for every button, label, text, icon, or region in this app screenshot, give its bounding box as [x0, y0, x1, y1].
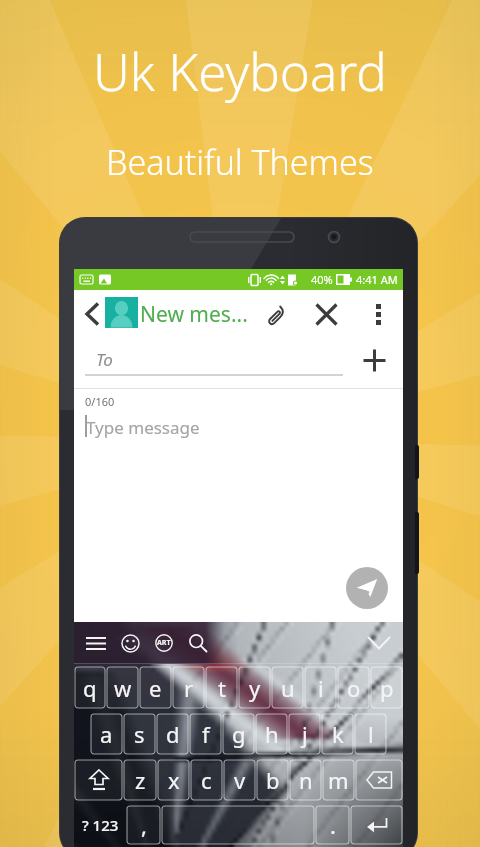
staticText: o	[347, 673, 361, 703]
button[interactable]: More options	[362, 298, 394, 330]
button[interactable]	[323, 760, 354, 800]
button[interactable]	[290, 760, 321, 800]
staticText: 0/160	[85, 394, 115, 409]
button[interactable]: Menu	[82, 629, 110, 657]
staticText: 40%	[311, 272, 333, 287]
staticText: r	[184, 673, 194, 703]
button[interactable]	[124, 760, 156, 800]
staticText: a	[100, 719, 113, 749]
staticText: e	[149, 673, 162, 703]
staticText: To	[96, 348, 113, 371]
staticText: k	[332, 719, 344, 749]
staticText: h	[265, 719, 279, 749]
button[interactable]	[157, 714, 188, 754]
button[interactable]	[371, 667, 402, 708]
button[interactable]	[206, 667, 237, 708]
button[interactable]	[223, 714, 254, 754]
button[interactable]: Enter	[351, 806, 402, 844]
button[interactable]: Back	[76, 298, 108, 330]
button[interactable]	[107, 667, 138, 708]
button[interactable]: Attach	[260, 298, 292, 330]
button[interactable]: Art themes	[150, 629, 178, 657]
staticText: ,	[141, 810, 147, 840]
button[interactable]	[173, 667, 204, 708]
staticText: j	[302, 719, 308, 749]
staticText: t	[218, 673, 226, 703]
staticText: v	[234, 765, 246, 795]
staticText: c	[201, 765, 212, 795]
staticText: d	[166, 719, 180, 749]
button[interactable]	[355, 714, 386, 754]
button[interactable]	[124, 714, 155, 754]
staticText: 4:41 AM	[356, 272, 398, 287]
button[interactable]	[158, 760, 189, 800]
staticText: y	[249, 673, 261, 703]
button[interactable]	[140, 667, 171, 708]
staticText: g	[232, 719, 246, 749]
button[interactable]	[272, 667, 303, 708]
staticText: f	[202, 719, 210, 749]
button[interactable]	[191, 760, 222, 800]
button[interactable]: ? 123	[74, 803, 126, 847]
staticText: m	[328, 765, 349, 795]
button[interactable]	[75, 667, 105, 708]
staticText: n	[299, 765, 313, 795]
button[interactable]	[316, 806, 349, 844]
staticText: New mes...	[140, 300, 248, 329]
staticText: u	[281, 673, 295, 703]
button[interactable]: Add recipient	[358, 344, 390, 376]
staticText: b	[266, 765, 280, 795]
button[interactable]: Emoji	[116, 629, 144, 657]
button[interactable]	[224, 760, 255, 800]
staticText: l	[368, 719, 374, 749]
button[interactable]: Search	[184, 629, 212, 657]
button[interactable]	[257, 760, 288, 800]
button[interactable]	[239, 667, 270, 708]
button[interactable]: Shift	[75, 760, 122, 800]
button[interactable]	[256, 714, 287, 754]
button[interactable]	[289, 714, 320, 754]
staticText: s	[134, 719, 145, 749]
staticText: .	[330, 810, 336, 840]
staticText: Uk Keyboard	[93, 36, 387, 105]
staticText: z	[135, 765, 146, 795]
staticText: w	[114, 673, 132, 703]
staticText: ? 123	[82, 815, 119, 835]
staticText: q	[83, 673, 97, 703]
button[interactable]: Space	[162, 806, 314, 844]
button[interactable]: Close	[310, 298, 342, 330]
staticText: i	[318, 673, 324, 703]
staticText: x	[168, 765, 180, 795]
staticText: Beautiful Themes	[106, 139, 374, 185]
button[interactable]	[338, 667, 369, 708]
button[interactable]	[91, 714, 122, 754]
button[interactable]	[322, 714, 353, 754]
button[interactable]: Send	[346, 567, 388, 609]
staticText: p	[380, 673, 394, 703]
staticText: Type message	[86, 416, 200, 439]
button[interactable]	[190, 714, 221, 754]
button[interactable]: Hide keyboard	[362, 626, 396, 660]
staticText: ART	[157, 638, 171, 648]
button[interactable]	[127, 806, 160, 844]
button[interactable]	[305, 667, 336, 708]
button[interactable]: Backspace	[356, 760, 402, 800]
